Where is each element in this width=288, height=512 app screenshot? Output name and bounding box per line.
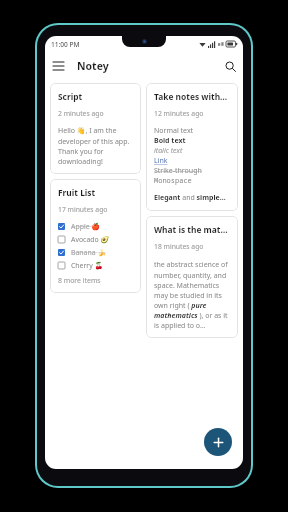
staticText: italic text bbox=[154, 146, 183, 156]
staticText: Banana 🍌 bbox=[71, 248, 106, 257]
staticText: Cherry 🍒 bbox=[71, 261, 104, 270]
button[interactable]: Cherry 🍒 bbox=[58, 259, 133, 272]
staticText: Notey bbox=[77, 59, 109, 73]
staticText: Bold text bbox=[154, 136, 186, 146]
staticText: Take notes with… bbox=[154, 91, 228, 102]
button[interactable]: Script bbox=[50, 83, 141, 174]
button[interactable]: Fruit List bbox=[50, 179, 141, 293]
button[interactable]: Take notes with… bbox=[146, 83, 238, 211]
button[interactable]: Add note bbox=[204, 428, 232, 456]
staticText: Elegant and simple… bbox=[154, 193, 226, 203]
staticText: Script bbox=[58, 91, 83, 102]
button[interactable]: What is the mat… bbox=[146, 216, 238, 338]
staticText: 8 more items bbox=[58, 276, 101, 285]
staticText: 11:00 PM bbox=[51, 40, 80, 49]
staticText: 17 minutes ago bbox=[58, 205, 108, 214]
button[interactable]: Search bbox=[217, 53, 243, 79]
staticText: the abstract science of number, quantity… bbox=[154, 260, 230, 330]
staticText: Apple 🍎 bbox=[71, 222, 100, 231]
staticText: 18 minutes ago bbox=[154, 242, 204, 251]
button[interactable]: Avocado 🥑 bbox=[58, 233, 133, 246]
staticText: What is the mat… bbox=[154, 224, 228, 235]
button[interactable]: Banana 🍌 bbox=[58, 246, 133, 259]
staticText: Normal text bbox=[154, 126, 194, 136]
button[interactable]: Open navigation menu bbox=[45, 53, 71, 79]
staticText: Fruit List bbox=[58, 187, 96, 198]
staticText: Monospace bbox=[154, 176, 192, 186]
staticText: Strike-through bbox=[154, 166, 202, 176]
staticText: 2 minutes ago bbox=[58, 109, 104, 118]
button[interactable]: Apple 🍎 bbox=[58, 220, 133, 233]
staticText: Link bbox=[154, 156, 168, 166]
staticText: Avocado 🥑 bbox=[71, 235, 110, 244]
staticText: 12 minutes ago bbox=[154, 109, 204, 118]
staticText: Hello 👋, I am the developer of this app.… bbox=[58, 126, 133, 166]
